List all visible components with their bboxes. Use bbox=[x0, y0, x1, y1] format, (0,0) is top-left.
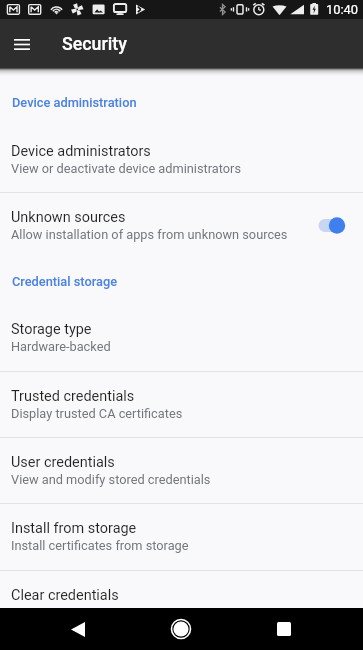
button[interactable]: Clear credentials bbox=[0, 571, 363, 637]
staticText: View and modify stored credentials bbox=[11, 472, 211, 487]
staticText: Hardware-backed bbox=[11, 339, 111, 354]
staticText: Unknown sources bbox=[11, 209, 126, 226]
button[interactable]: Storage type bbox=[0, 305, 363, 371]
staticText: View or deactivate device administrators bbox=[11, 161, 241, 176]
button[interactable]: Recent apps bbox=[263, 608, 305, 650]
staticText: Trusted credentials bbox=[11, 388, 135, 405]
button[interactable]: User credentials bbox=[0, 438, 363, 503]
button[interactable]: Back bbox=[57, 608, 99, 650]
staticText: Credential storage bbox=[12, 274, 118, 289]
button[interactable]: Trusted credentials bbox=[0, 372, 363, 437]
button[interactable]: Home bbox=[160, 608, 202, 650]
button[interactable]: Device administrators bbox=[0, 127, 363, 192]
staticText: Device administrators bbox=[11, 143, 151, 160]
button[interactable]: Open navigation menu bbox=[2, 24, 42, 64]
staticText: Install from storage bbox=[11, 520, 137, 537]
staticText: Allow installation of apps from unknown … bbox=[11, 227, 288, 242]
staticText: Storage type bbox=[11, 321, 92, 338]
staticText: User credentials bbox=[11, 454, 115, 471]
button[interactable]: Unknown sources bbox=[0, 193, 363, 259]
staticText: Security bbox=[62, 33, 127, 54]
staticText: Display trusted CA certificates bbox=[11, 406, 183, 421]
staticText: 10:40 bbox=[326, 2, 359, 17]
staticText: Clear credentials bbox=[11, 587, 119, 604]
button[interactable]: Unknown sources switch bbox=[317, 213, 347, 237]
staticText: Device administration bbox=[12, 95, 137, 110]
button[interactable]: Install from storage bbox=[0, 504, 363, 570]
staticText: Install certificates from storage bbox=[11, 538, 189, 553]
